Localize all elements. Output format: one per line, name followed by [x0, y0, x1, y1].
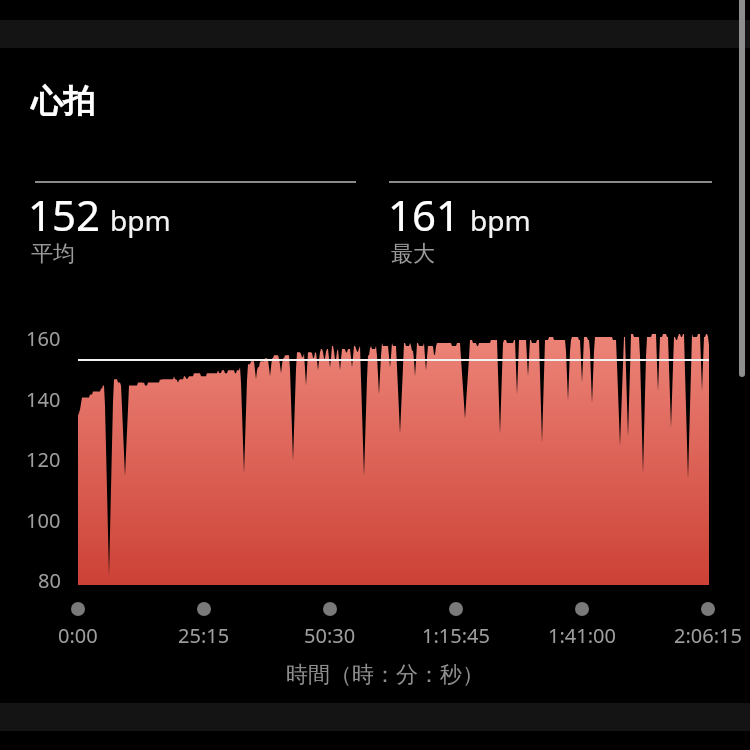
staticText: 161: [388, 186, 461, 243]
staticText: 100: [26, 507, 61, 531]
staticText: 心拍: [31, 81, 95, 121]
staticText: 2:06:15: [674, 622, 742, 646]
staticText: 152: [28, 186, 101, 243]
staticText: 最大: [391, 240, 435, 268]
staticText: 120: [26, 446, 61, 470]
staticText: 80: [38, 567, 61, 591]
staticText: 160: [26, 325, 61, 349]
staticText: 平均: [31, 240, 75, 268]
staticText: bpm: [110, 201, 171, 239]
staticText: bpm: [470, 201, 531, 239]
button[interactable]: 161: [388, 186, 531, 243]
staticText: 1:41:00: [548, 622, 616, 646]
staticText: 時間（時：分：秒）: [286, 661, 484, 687]
staticText: 50:30: [304, 622, 356, 646]
staticText: 1:15:45: [422, 622, 490, 646]
button[interactable]: 152: [28, 186, 171, 243]
staticText: 0:00: [58, 622, 98, 646]
staticText: 140: [26, 386, 61, 410]
staticText: 25:15: [178, 622, 230, 646]
